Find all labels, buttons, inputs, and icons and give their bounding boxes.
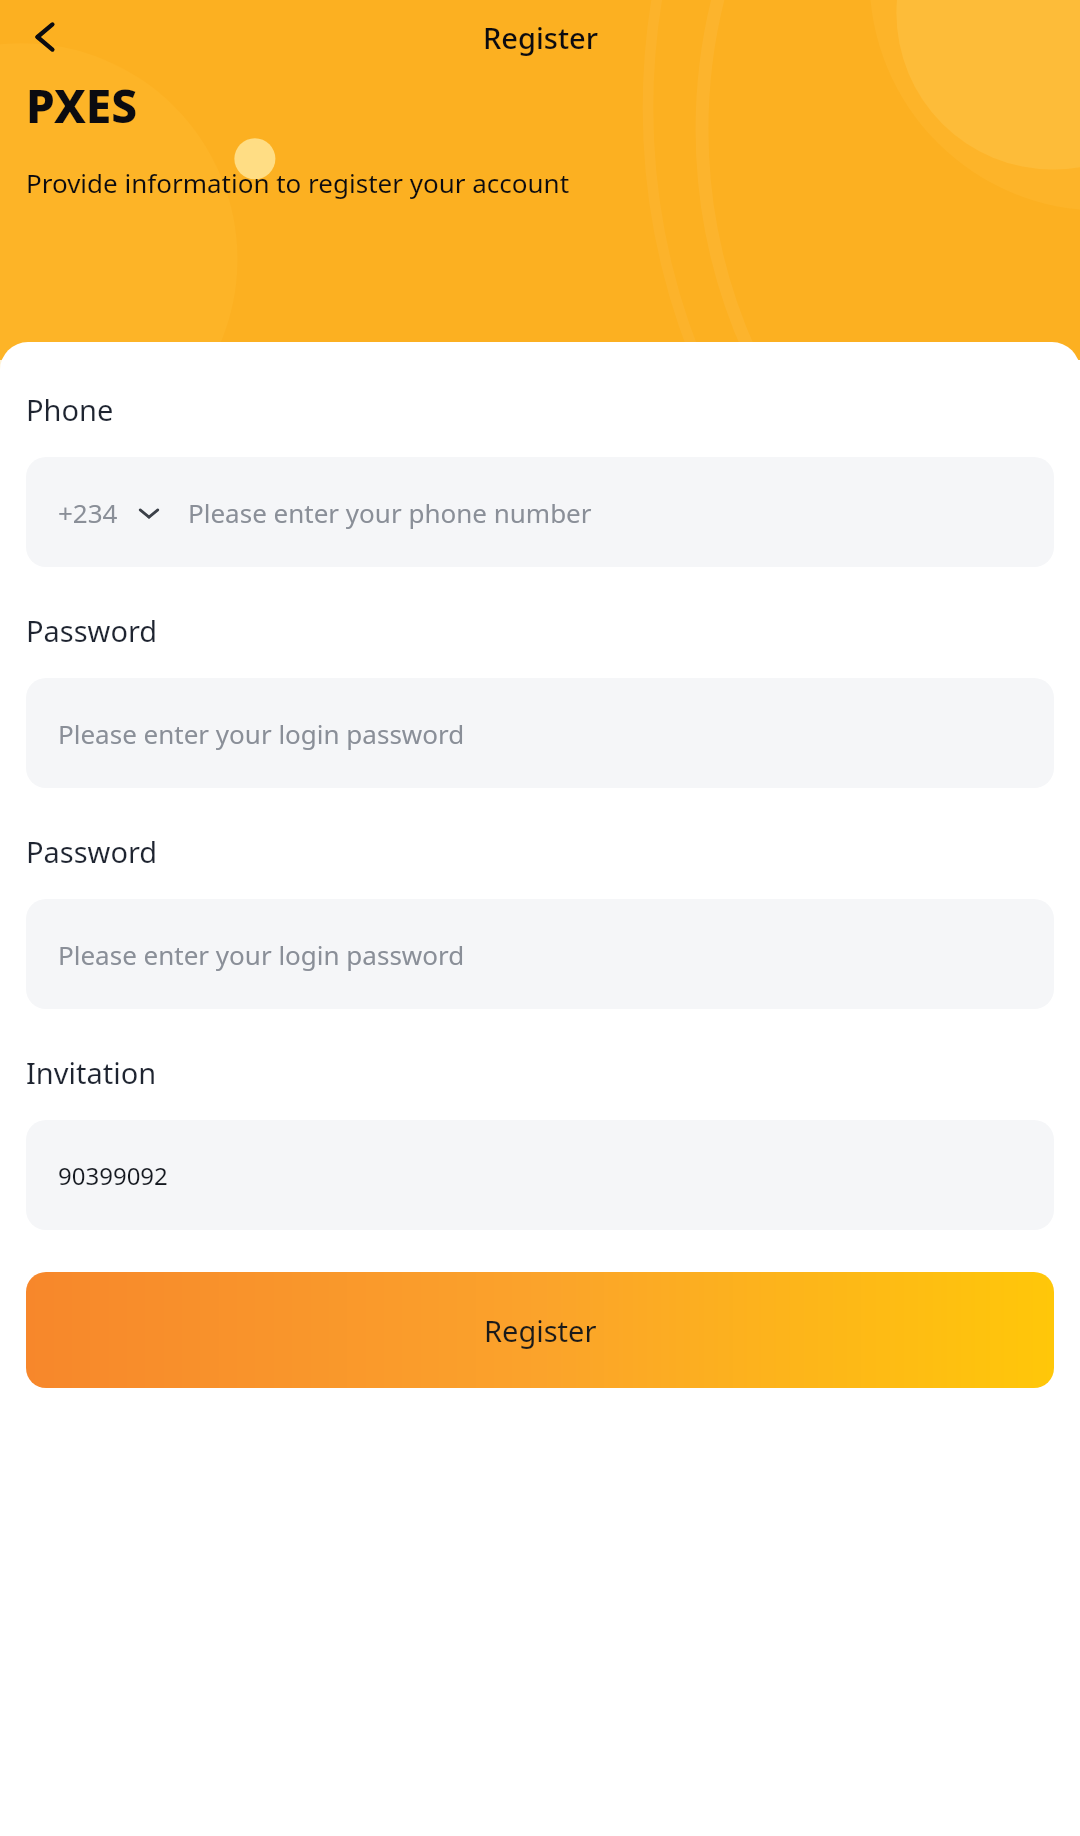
- staticText: +234: [58, 495, 118, 530]
- staticText: Invitation: [26, 1053, 157, 1092]
- staticText: PXES: [26, 74, 138, 137]
- staticText: Phone: [26, 390, 114, 429]
- button[interactable]: Back: [14, 4, 80, 70]
- staticText: Password: [26, 832, 158, 871]
- staticText: 90399092: [58, 1159, 168, 1192]
- button[interactable]: +234: [26, 457, 1054, 567]
- button[interactable]: Please enter your login password: [26, 899, 1054, 1009]
- staticText: Password: [26, 611, 158, 650]
- staticText: Please enter your login password: [58, 716, 465, 751]
- button[interactable]: 90399092: [26, 1120, 1054, 1230]
- staticText: Register: [484, 1311, 597, 1350]
- staticText: Please enter your phone number: [188, 495, 592, 530]
- button[interactable]: Register: [26, 1272, 1054, 1388]
- button[interactable]: Please enter your login password: [26, 678, 1054, 788]
- staticText: Provide information to register your acc…: [26, 165, 570, 200]
- staticText: Please enter your login password: [58, 937, 465, 972]
- staticText: Register: [483, 18, 598, 57]
